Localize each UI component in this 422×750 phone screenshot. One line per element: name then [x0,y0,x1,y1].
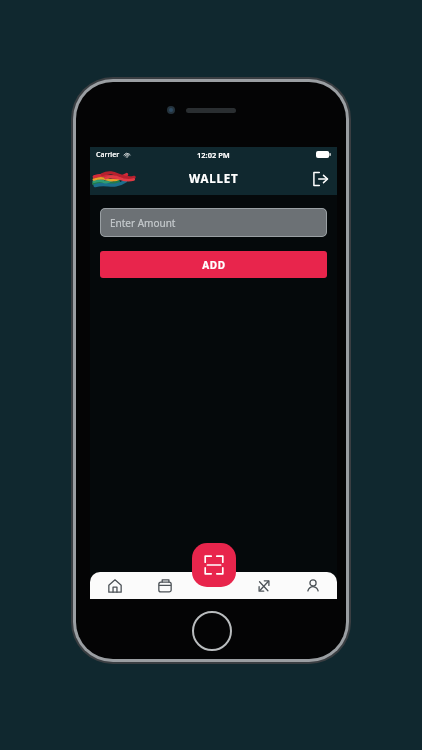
staticText: Carrier [96,150,120,160]
button[interactable]: Enter Amount [100,208,327,237]
staticText: Enter Amount [110,216,176,230]
button[interactable]: Home [90,572,140,599]
button[interactable]: Profile [288,572,337,599]
button[interactable]: Wallet [140,572,190,599]
staticText: ADD [202,258,226,272]
staticText: WALLET [189,171,239,187]
button[interactable]: Log out [309,168,331,190]
button[interactable]: Scan [192,543,236,587]
button[interactable]: ADD [100,251,327,278]
button[interactable]: Transfer [239,572,288,599]
staticText: 12:02 PM [197,150,230,160]
